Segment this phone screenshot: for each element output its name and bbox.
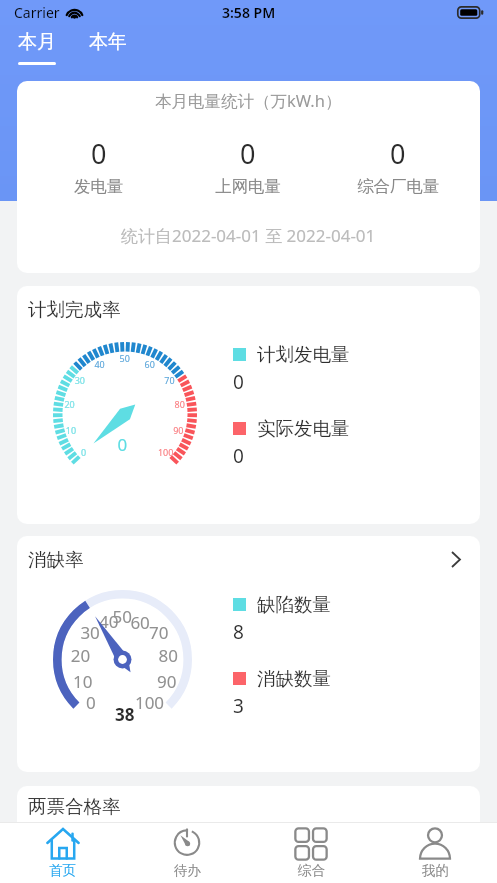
staticText: 我的 [422,862,449,879]
button[interactable]: 我的 [373,823,497,883]
staticText: 首页 [49,862,76,879]
staticText: 0 [91,135,107,172]
button[interactable]: 首页 [0,823,125,883]
staticText: 0 [390,135,406,172]
staticText: 两票合格率 [28,795,121,818]
staticText: 综合 [298,862,325,879]
button[interactable]: 消缺率 [17,536,480,577]
other: More [451,551,461,568]
staticText: 0 [240,135,256,172]
staticText: 计划发电量 [257,343,350,366]
staticText: 计划完成率 [28,298,121,321]
staticText: 上网电量 [215,176,281,197]
staticText: 综合厂电量 [357,176,440,197]
staticText: 本月 [18,30,56,54]
staticText: 0 [233,443,244,469]
staticText: 缺陷数量 [257,593,331,616]
staticText: 本月电量统计（万kW.h） [155,89,342,112]
staticText: 发电量 [74,176,124,197]
staticText: 3 [233,693,244,719]
staticText: Carrier [14,3,60,22]
button[interactable]: 本年 [89,24,127,54]
staticText: 实际发电量 [257,417,350,440]
button[interactable]: 本月 [18,24,56,65]
staticText: 待办 [174,862,201,879]
staticText: 统计自2022-04-01 至 2022-04-01 [121,224,376,247]
staticText: 本年 [89,30,127,54]
staticText: 3:58 PM [222,3,276,22]
staticText: 8 [233,619,244,645]
button[interactable]: 综合 [249,823,373,883]
staticText: 0 [233,369,244,395]
staticText: 消缺数量 [257,667,331,690]
staticText: 消缺率 [28,548,84,571]
button[interactable]: 待办 [125,823,249,883]
